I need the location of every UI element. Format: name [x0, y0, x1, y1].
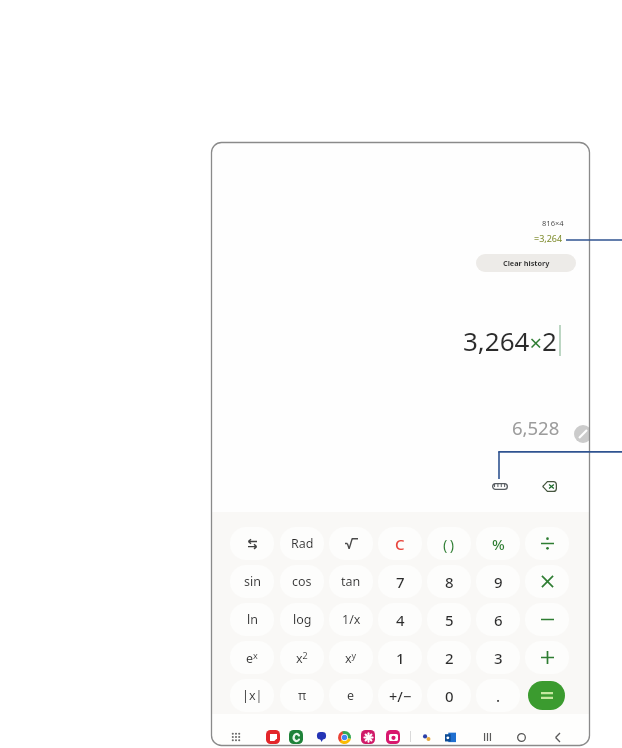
button[interactable]: . — [473, 676, 522, 714]
button[interactable]: C — [375, 524, 424, 562]
staticText: ln — [247, 611, 258, 628]
button[interactable] — [522, 600, 571, 638]
staticText: +/− — [389, 686, 412, 706]
button[interactable]: Keep — [266, 730, 280, 744]
button[interactable]: Edit result — [574, 425, 590, 443]
staticText: 2 — [445, 648, 454, 668]
button[interactable] — [326, 524, 375, 562]
button[interactable]: Clear history — [476, 254, 576, 272]
button[interactable]: Outlook — [443, 730, 457, 744]
button[interactable] — [522, 524, 571, 562]
staticText: . — [496, 686, 501, 706]
button[interactable]: Messages — [314, 730, 328, 744]
button[interactable]: 0 — [424, 676, 473, 714]
staticText: 816×4 — [542, 218, 564, 228]
button[interactable]: Apps — [225, 726, 247, 746]
staticText: 4 — [396, 610, 405, 630]
button[interactable]: Home — [508, 725, 534, 746]
button[interactable]: 9 — [473, 562, 522, 600]
button[interactable] — [522, 562, 571, 600]
staticText: 3,264×2 — [463, 323, 557, 358]
button[interactable]: π — [277, 676, 326, 714]
button[interactable]: Hide keypad — [488, 474, 512, 498]
staticText: =3,264 — [534, 232, 563, 244]
button[interactable]: |x| — [227, 676, 277, 714]
staticText: e — [347, 687, 355, 704]
button[interactable]: Phone — [289, 730, 303, 744]
staticText: 7 — [396, 572, 405, 592]
button[interactable]: Recent app — [419, 730, 433, 744]
staticText: ex — [246, 649, 258, 667]
staticText: 1 — [396, 648, 405, 668]
button[interactable] — [522, 676, 571, 714]
button[interactable] — [227, 524, 277, 562]
staticText: 8 — [445, 572, 454, 592]
button[interactable]: e — [326, 676, 375, 714]
button[interactable]: Back — [544, 725, 570, 746]
staticText: 3 — [494, 648, 503, 668]
button[interactable]: % — [473, 524, 522, 562]
button[interactable]: ( ) — [424, 524, 473, 562]
button[interactable]: Chrome — [337, 730, 351, 744]
staticText: 6 — [494, 610, 503, 630]
button[interactable]: cos — [277, 562, 326, 600]
staticText: 1/x — [342, 611, 361, 628]
button[interactable]: sin — [227, 562, 277, 600]
staticText: π — [298, 687, 307, 704]
button[interactable]: 1 — [375, 638, 424, 676]
button[interactable]: 4 — [375, 600, 424, 638]
button[interactable]: xy — [326, 638, 375, 676]
button[interactable]: log — [277, 600, 326, 638]
staticText: 0 — [445, 686, 454, 706]
button[interactable]: +/− — [375, 676, 424, 714]
staticText: x2 — [296, 649, 308, 667]
button[interactable]: 5 — [424, 600, 473, 638]
button[interactable]: 3 — [473, 638, 522, 676]
staticText: tan — [341, 573, 361, 590]
staticText: 9 — [494, 572, 503, 592]
staticText: cos — [292, 573, 312, 590]
button[interactable]: Camera — [386, 730, 400, 744]
button[interactable]: Backspace — [537, 474, 561, 498]
staticText: log — [293, 611, 312, 628]
staticText: ( ) — [443, 534, 455, 554]
staticText: Clear history — [503, 258, 550, 268]
button[interactable] — [522, 638, 571, 676]
staticText: % — [492, 534, 505, 554]
button[interactable]: Recents — [474, 725, 500, 746]
staticText: Rad — [291, 535, 314, 552]
staticText: xy — [345, 649, 357, 667]
button[interactable]: ln — [227, 600, 277, 638]
button[interactable]: Rad — [277, 524, 326, 562]
button[interactable]: 1/x — [326, 600, 375, 638]
button[interactable]: 7 — [375, 562, 424, 600]
staticText: 6,528 — [512, 415, 560, 440]
staticText: 5 — [445, 610, 454, 630]
button[interactable]: x2 — [277, 638, 326, 676]
button[interactable]: 6 — [473, 600, 522, 638]
staticText: |x| — [242, 687, 263, 704]
staticText: C — [395, 534, 405, 554]
button[interactable]: Gallery — [361, 730, 375, 744]
button[interactable]: ex — [227, 638, 277, 676]
staticText: sin — [244, 573, 261, 590]
button[interactable]: tan — [326, 562, 375, 600]
button[interactable]: 2 — [424, 638, 473, 676]
button[interactable]: 8 — [424, 562, 473, 600]
